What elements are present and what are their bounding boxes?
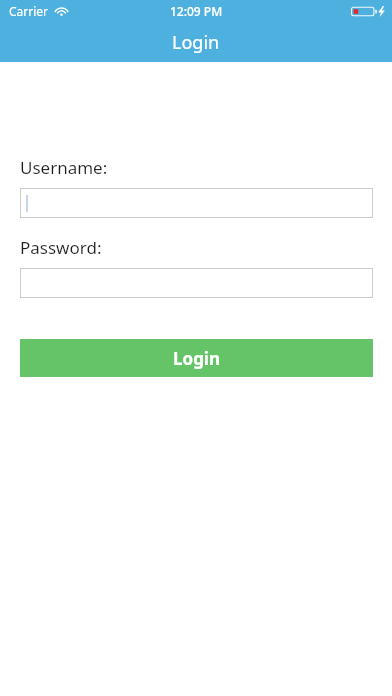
staticText: Username: xyxy=(20,156,108,179)
button[interactable]: Username input xyxy=(20,188,373,218)
staticText: Login xyxy=(172,30,220,55)
staticText: Carrier xyxy=(9,3,49,19)
button[interactable]: Login xyxy=(20,339,373,377)
staticText: Login xyxy=(173,347,221,370)
button[interactable]: Password input xyxy=(20,268,373,298)
staticText: 12:09 PM xyxy=(170,3,223,19)
staticText: Password: xyxy=(20,236,102,259)
